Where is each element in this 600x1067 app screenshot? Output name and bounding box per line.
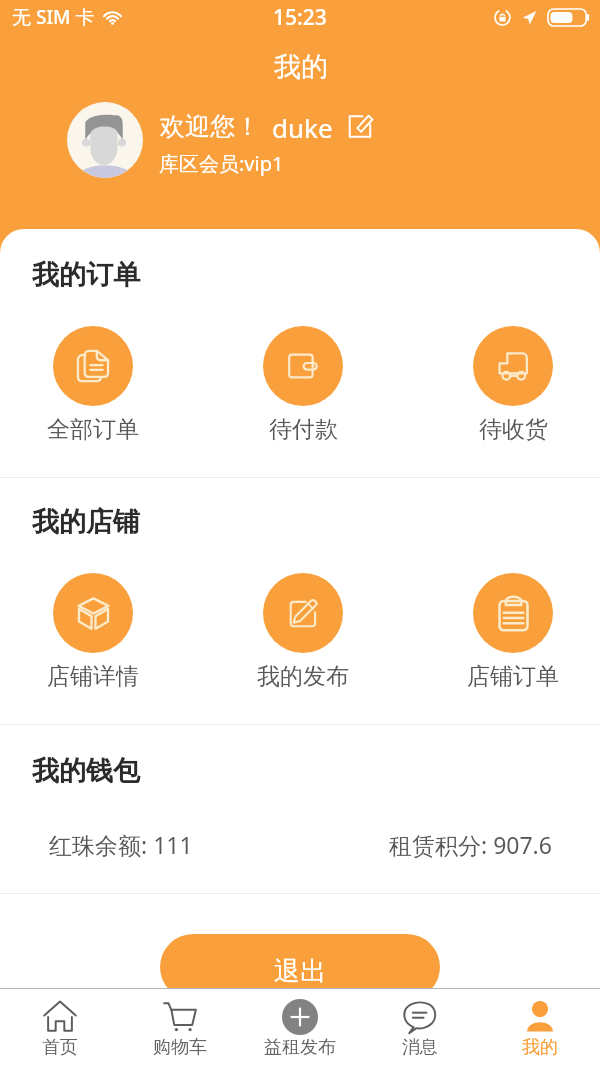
staticText: 我的店铺 xyxy=(32,505,140,539)
staticText: 店铺详情 xyxy=(47,662,139,691)
button[interactable]: 消息 xyxy=(360,989,480,1067)
button[interactable]: 待收货 xyxy=(453,326,573,444)
staticText: 退出 xyxy=(274,955,326,988)
staticText: 消息 xyxy=(402,1036,438,1059)
staticText: 我的钱包 xyxy=(32,754,140,788)
button[interactable]: 店铺订单 xyxy=(453,573,573,691)
button[interactable]: Edit profile xyxy=(347,113,374,140)
staticText: 欢迎您！ xyxy=(160,111,260,142)
staticText: 首页 xyxy=(42,1036,78,1059)
staticText: 待收货 xyxy=(479,415,548,444)
button[interactable]: 购物车 xyxy=(120,989,240,1067)
staticText: 益租发布 xyxy=(264,1036,336,1059)
button[interactable]: 我的发布 xyxy=(243,573,363,691)
button[interactable]: 益租发布 xyxy=(240,989,360,1067)
staticText: 我的订单 xyxy=(32,258,140,292)
button[interactable]: 待付款 xyxy=(243,326,363,444)
staticText: 全部订单 xyxy=(47,415,139,444)
button[interactable]: 店铺详情 xyxy=(33,573,153,691)
button[interactable]: 全部订单 xyxy=(33,326,153,444)
staticText: 我的 xyxy=(522,1036,558,1059)
staticText: 待付款 xyxy=(269,415,338,444)
staticText: 无 SIM 卡 xyxy=(12,4,95,30)
staticText: 店铺订单 xyxy=(467,662,559,691)
staticText: duke xyxy=(272,110,333,145)
staticText: 红珠余额: 111 xyxy=(49,829,193,860)
staticText: 15:23 xyxy=(273,3,327,32)
button[interactable]: 退出 xyxy=(160,934,440,1000)
button[interactable]: 首页 xyxy=(0,989,120,1067)
staticText: 租赁积分: 907.6 xyxy=(389,829,552,860)
staticText: 购物车 xyxy=(153,1036,207,1059)
staticText: 我的 xyxy=(274,50,328,84)
staticText: 我的发布 xyxy=(257,662,349,691)
staticText: 库区会员:vip1 xyxy=(159,150,284,177)
button[interactable]: 我的 xyxy=(480,989,600,1067)
